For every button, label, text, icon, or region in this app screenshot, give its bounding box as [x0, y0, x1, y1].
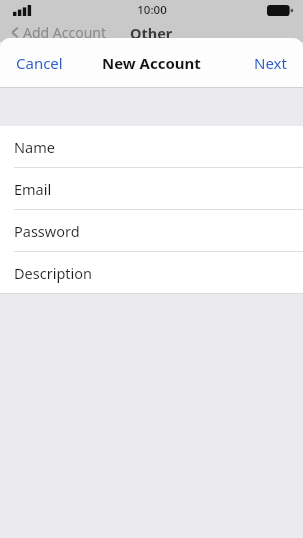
staticText: Add Account — [23, 23, 107, 42]
button[interactable]: Password — [0, 210, 303, 252]
staticText: Cancel — [16, 53, 63, 73]
staticText: New Account — [102, 53, 201, 73]
staticText: Description — [14, 263, 93, 283]
staticText: Next — [254, 53, 287, 73]
button[interactable]: Name — [0, 126, 303, 168]
button[interactable]: Next — [238, 38, 303, 88]
staticText: Name — [14, 137, 55, 157]
staticText: Password — [14, 221, 80, 241]
button[interactable]: Description — [0, 252, 303, 293]
staticText: Email — [14, 179, 52, 199]
staticText: 10:00 — [137, 2, 167, 18]
button[interactable]: Cancel — [0, 38, 79, 88]
staticText: Other — [130, 23, 173, 42]
button[interactable]: Email — [0, 168, 303, 210]
